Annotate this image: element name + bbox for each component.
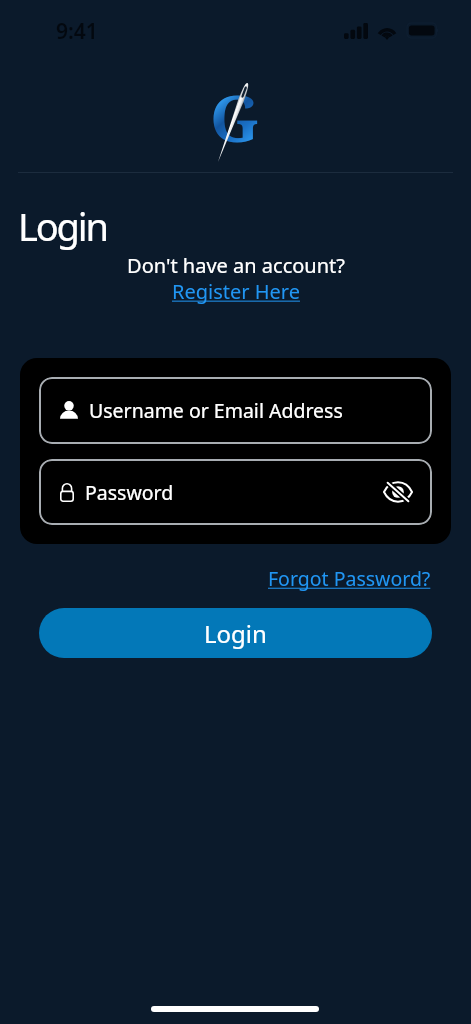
button[interactable]: Username or Email Address xyxy=(39,377,432,444)
staticText: Username or Email Address xyxy=(89,397,343,424)
staticText: 9:41 xyxy=(56,17,98,46)
staticText: G xyxy=(210,74,260,161)
staticText: Login xyxy=(204,617,267,650)
button[interactable]: Show password xyxy=(383,477,413,507)
button[interactable]: Login xyxy=(39,608,432,658)
button[interactable]: Forgot Password? xyxy=(266,565,433,592)
staticText: Don't have an account? xyxy=(127,252,345,279)
staticText: Forgot Password? xyxy=(268,565,431,592)
button[interactable]: Register Here xyxy=(170,278,302,305)
staticText: Login xyxy=(18,200,107,252)
button[interactable]: Password xyxy=(39,459,432,525)
staticText: Password xyxy=(85,479,174,506)
staticText: Register Here xyxy=(172,278,300,305)
